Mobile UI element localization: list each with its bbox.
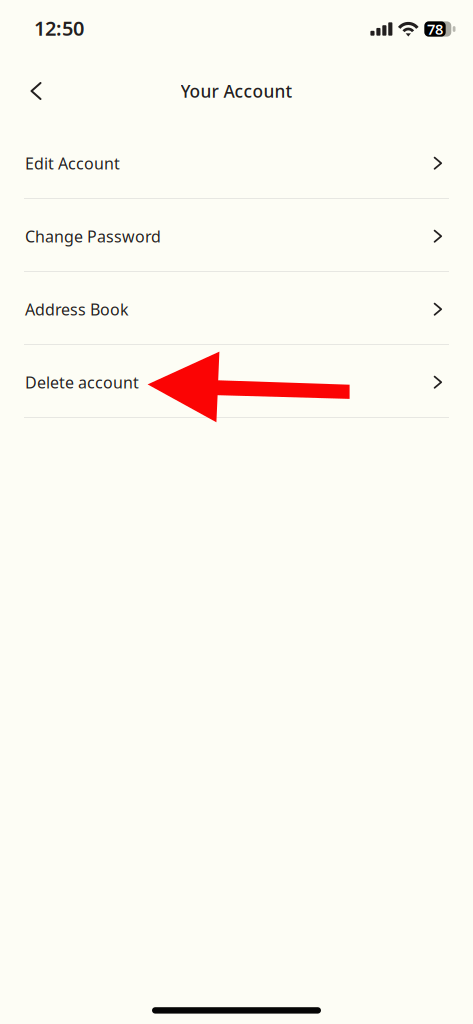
staticText: Edit Account xyxy=(25,153,120,174)
staticText: Address Book xyxy=(25,299,129,320)
staticText: 78 xyxy=(427,19,443,39)
button[interactable]: Back xyxy=(19,71,52,111)
staticText: Change Password xyxy=(25,226,161,247)
staticText: Your Account xyxy=(180,79,292,102)
staticText: 12:50 xyxy=(34,15,84,41)
button[interactable]: Edit Account xyxy=(0,126,473,198)
button[interactable]: Change Password xyxy=(0,199,473,271)
button[interactable]: Address Book xyxy=(0,272,473,344)
staticText: Delete account xyxy=(25,372,139,393)
button[interactable]: Delete account xyxy=(0,345,473,417)
